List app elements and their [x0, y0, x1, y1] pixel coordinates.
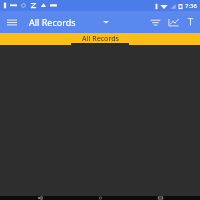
button[interactable]: Filter — [146, 13, 164, 31]
staticText: All Records — [82, 34, 119, 44]
button[interactable]: Home — [80, 196, 120, 200]
staticText: All Records — [29, 16, 76, 28]
button[interactable]: Recent apps — [140, 196, 180, 200]
button[interactable]: More options — [182, 14, 198, 30]
staticText: 7:36 — [185, 2, 197, 10]
button[interactable]: Select records filter — [99, 15, 113, 29]
button[interactable]: Open navigation drawer — [4, 14, 20, 30]
button[interactable]: Statistics chart — [164, 13, 182, 31]
button[interactable]: Back — [20, 196, 60, 200]
button[interactable]: All Records — [69, 33, 131, 45]
